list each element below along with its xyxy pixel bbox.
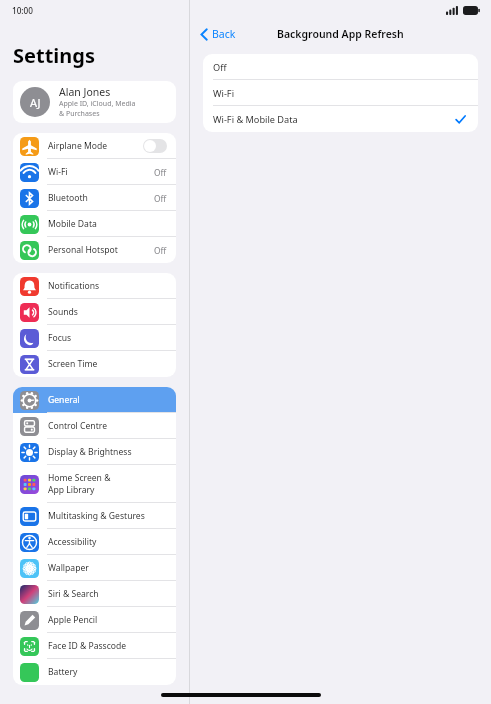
staticText: Wi-Fi [48,166,68,178]
staticText: Settings [13,42,95,69]
button[interactable]: Accessibility [13,529,176,555]
button[interactable]: General [13,387,176,413]
button[interactable]: Apple Pencil [13,607,176,633]
button[interactable]: Sounds [13,299,176,325]
staticText: Apple Pencil [48,614,98,626]
staticText: Notifications [48,280,100,292]
staticText: Display & Brightness [48,446,132,458]
button[interactable]: Display & Brightness [13,439,176,465]
staticText: & Purchases [59,109,100,119]
staticText: Home Screen & [48,472,111,484]
button[interactable]: Airplane Mode toggle [143,139,167,153]
staticText: Airplane Mode [48,140,108,152]
staticText: Off [154,167,167,178]
staticText: Control Centre [48,420,107,432]
staticText: App Library [48,484,95,496]
button[interactable]: Screen Time [13,351,176,377]
button[interactable]: Wallpaper [13,555,176,581]
staticText: Bluetooth [48,192,88,204]
button[interactable]: Notifications [13,273,176,299]
staticText: Off [213,61,466,74]
staticText: Off [154,193,167,204]
staticText: Sounds [48,306,78,318]
button[interactable]: Home Screen & [13,465,176,503]
staticText: Background App Refresh [277,27,404,41]
staticText: Off [154,245,167,256]
staticText: Apple ID, iCloud, Media [59,99,136,109]
staticText: AJ [30,95,41,110]
button[interactable]: AJ [13,81,176,123]
staticText: General [48,394,80,406]
staticText: Face ID & Passcode [48,640,127,652]
button[interactable]: Off [203,54,478,80]
button[interactable]: Mobile Data [13,211,176,237]
button[interactable]: Siri & Search [13,581,176,607]
staticText: Focus [48,332,72,344]
staticText: Multitasking & Gestures [48,510,145,522]
button[interactable]: Focus [13,325,176,351]
staticText: Wallpaper [48,562,89,574]
staticText: Screen Time [48,358,98,370]
staticText: Mobile Data [48,218,97,230]
button[interactable]: Bluetooth [13,185,176,211]
staticText: Alan Jones [59,85,111,99]
button[interactable]: Wi-Fi & Mobile Data [203,106,478,132]
button[interactable]: Control Centre [13,413,176,439]
button[interactable]: Personal Hotspot [13,237,176,263]
button[interactable]: Airplane Mode [13,133,176,159]
staticText: Battery [48,666,78,678]
staticText: Wi-Fi & Mobile Data [213,113,455,126]
staticText: Back [212,27,236,41]
staticText: Wi-Fi [213,87,466,100]
staticText: Personal Hotspot [48,244,118,256]
staticText: Siri & Search [48,588,99,600]
staticText: Accessibility [48,536,97,548]
staticText: 10:00 [12,5,33,16]
button[interactable]: Wi-Fi [13,159,176,185]
button[interactable]: Battery [13,659,176,685]
button[interactable]: Multitasking & Gestures [13,503,176,529]
button[interactable]: Wi-Fi [203,80,478,106]
button[interactable]: Back [200,27,236,41]
button[interactable]: Face ID & Passcode [13,633,176,659]
